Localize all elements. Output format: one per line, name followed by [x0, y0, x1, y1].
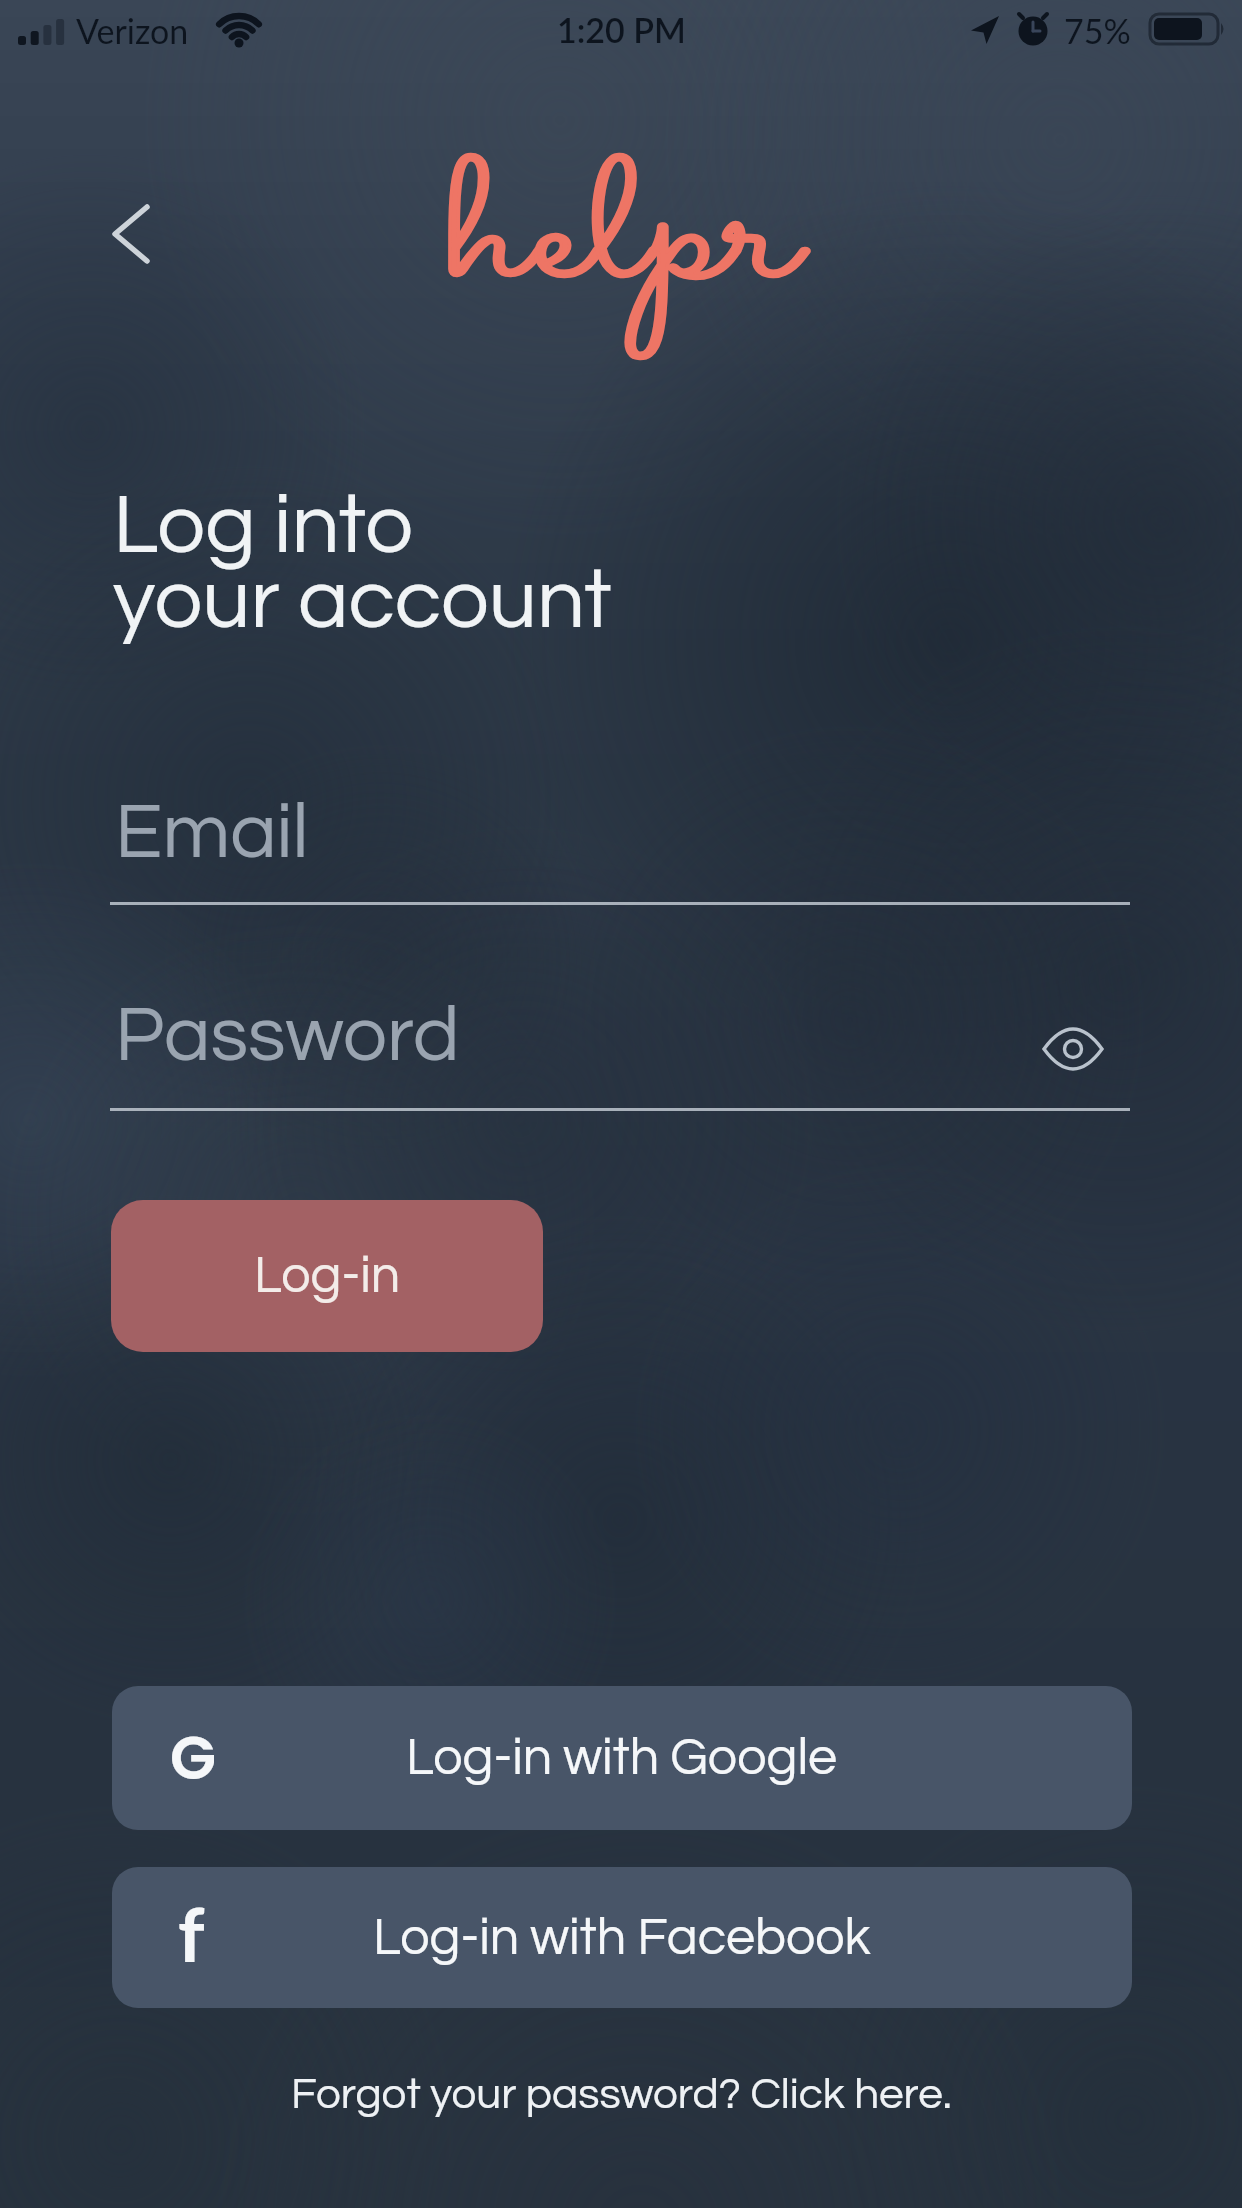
- button[interactable]: f: [112, 1867, 1132, 2008]
- button[interactable]: [92, 196, 168, 272]
- staticText: Email: [115, 793, 309, 873]
- staticText: helpr: [445, 117, 798, 365]
- button[interactable]: Password: [110, 983, 1130, 1111]
- button[interactable]: Email: [110, 780, 1130, 905]
- staticText: Log-in with Facebook: [373, 1911, 871, 1965]
- button[interactable]: G: [112, 1686, 1132, 1830]
- staticText: G: [170, 1716, 217, 1800]
- staticText: your account: [113, 557, 612, 645]
- staticText: Forgot your password? Click here.: [291, 2072, 952, 2117]
- button[interactable]: Log-in: [111, 1200, 543, 1352]
- staticText: Log-in with Google: [406, 1731, 838, 1785]
- button[interactable]: Forgot your password? Click here.: [0, 2072, 1242, 2117]
- staticText: Password: [115, 996, 460, 1076]
- staticText: 1:20 PM: [557, 9, 686, 50]
- staticText: Log-in: [254, 1249, 401, 1303]
- staticText: f: [178, 1889, 205, 1978]
- staticText: Log into: [113, 482, 414, 570]
- staticText: Verizon: [76, 10, 189, 51]
- staticText: 75%: [1064, 10, 1131, 51]
- staticText: helpr: [445, 117, 798, 365]
